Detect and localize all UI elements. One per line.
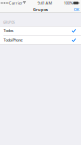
staticText: Grupos bbox=[33, 7, 48, 12]
button[interactable]: Todos bbox=[0, 26, 81, 35]
staticText: TodoiPhone bbox=[3, 37, 22, 42]
button[interactable]: OK bbox=[72, 6, 81, 13]
staticText: Todos bbox=[3, 28, 13, 33]
staticText: 9:41 AM bbox=[37, 0, 52, 6]
staticText: Carrier bbox=[9, 0, 23, 6]
staticText: 100% bbox=[64, 0, 73, 6]
staticText: GRUPOS bbox=[3, 21, 14, 25]
staticText: OK bbox=[74, 7, 79, 12]
button[interactable]: TodoiPhone bbox=[0, 35, 81, 44]
